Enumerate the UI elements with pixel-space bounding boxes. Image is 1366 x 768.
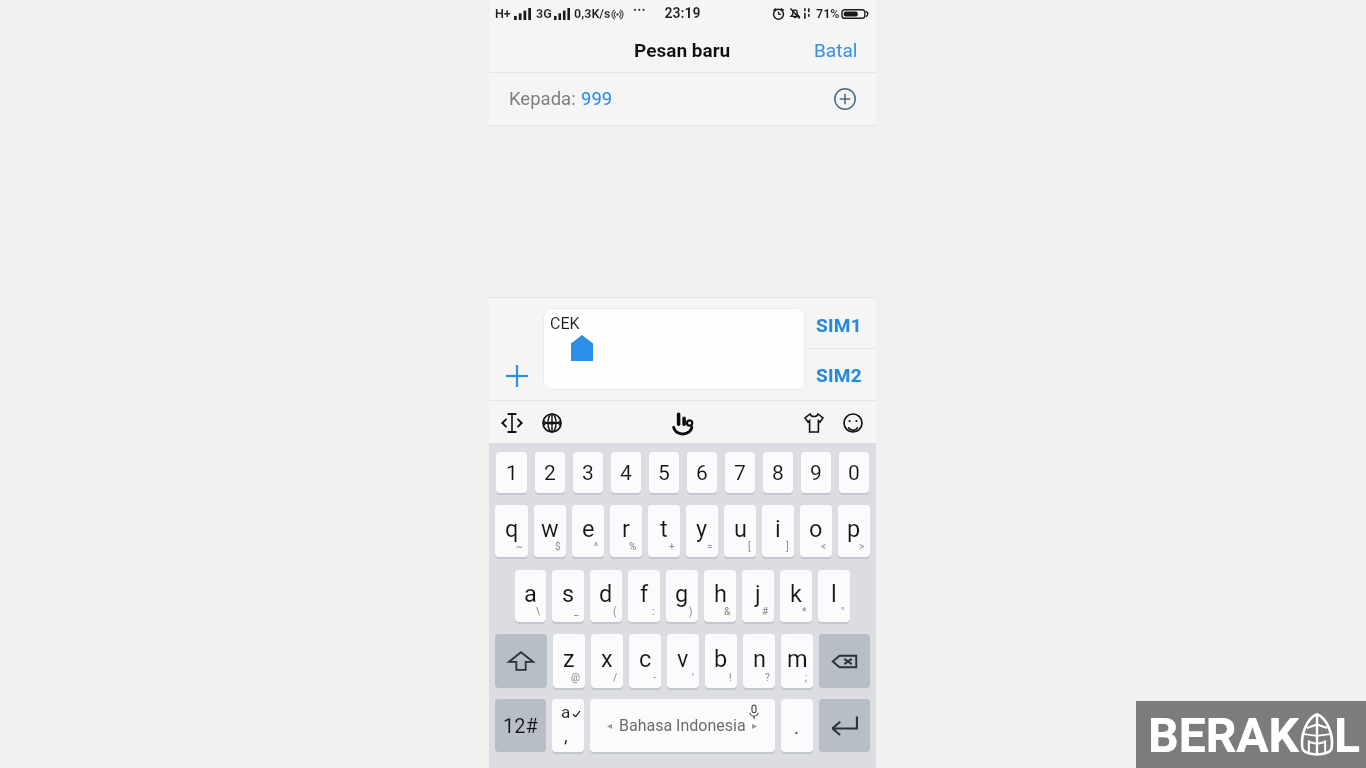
button[interactable]: i [762, 505, 794, 557]
staticText: ··· [633, 2, 646, 18]
staticText: z [563, 645, 575, 673]
staticText: L [1334, 707, 1360, 763]
staticText: @ [571, 672, 580, 684]
button[interactable]: f [628, 570, 660, 622]
button[interactable]: Theme [803, 405, 825, 441]
button[interactable]: l [818, 570, 850, 622]
button[interactable]: s [552, 570, 584, 622]
staticText: SIM1 [816, 314, 862, 336]
staticText: m [787, 645, 808, 673]
button[interactable]: a [515, 570, 546, 622]
staticText: SIM2 [816, 364, 862, 386]
staticText: d [599, 580, 613, 608]
button[interactable]: . [781, 699, 813, 752]
staticText: 5 [658, 461, 670, 486]
button[interactable]: u [724, 505, 756, 557]
staticText: 999 [581, 88, 613, 110]
button[interactable]: q [495, 505, 528, 557]
staticText: l [831, 580, 837, 608]
button[interactable]: 6 [687, 452, 717, 493]
staticText: 4 [620, 461, 632, 486]
staticText: - [653, 672, 656, 684]
staticText: Bahasa Indonesia [619, 716, 746, 735]
button[interactable]: Kepada: [489, 73, 876, 125]
staticText: / [613, 672, 618, 684]
staticText: ▸ [752, 720, 758, 732]
staticText: , [564, 724, 568, 746]
staticText: ] [786, 541, 789, 553]
staticText: ' [692, 672, 694, 684]
staticText: x [601, 645, 613, 673]
staticText: e [582, 515, 595, 543]
staticText: s [562, 580, 575, 608]
button[interactable]: 9 [801, 452, 831, 493]
button[interactable]: k [780, 570, 812, 622]
staticText: + [669, 541, 675, 553]
button[interactable]: v [667, 634, 699, 688]
button[interactable]: Backspace [819, 634, 870, 688]
staticText: Pesan baru [634, 39, 731, 61]
button[interactable]: 5 [649, 452, 679, 493]
button[interactable]: Emoji [842, 405, 864, 441]
staticText: j [755, 580, 761, 608]
staticText: ; [805, 672, 808, 684]
staticText: ! [729, 672, 732, 684]
button[interactable]: p [838, 505, 870, 557]
button[interactable] [495, 699, 546, 752]
staticText: ^ [594, 541, 599, 553]
button[interactable]: n [743, 634, 775, 688]
staticText: n [753, 645, 766, 673]
button[interactable]: h [704, 570, 736, 622]
button[interactable]: x [591, 634, 623, 688]
staticText: 23:19 [489, 5, 876, 21]
staticText: k [790, 580, 802, 608]
button[interactable]: 3 [573, 452, 603, 493]
button[interactable]: w [534, 505, 566, 557]
staticText: w [541, 515, 559, 543]
button[interactable]: 7 [725, 452, 755, 493]
button[interactable]: y [686, 505, 718, 557]
button[interactable]: SIM1 [810, 298, 876, 348]
button[interactable]: e [572, 505, 604, 557]
button[interactable]: CEK [543, 308, 805, 390]
button[interactable]: SIM2 [810, 349, 876, 400]
button[interactable]: Keyboard menu [672, 405, 694, 441]
staticText: 0 [848, 461, 860, 486]
staticText: : [652, 606, 655, 618]
button[interactable]: Text cursor [501, 405, 523, 441]
button[interactable]: 2 [535, 452, 565, 493]
staticText: _ [574, 606, 579, 618]
staticText: ) [689, 606, 693, 618]
staticText: BERAK [1148, 707, 1300, 763]
button[interactable]: j [742, 570, 774, 622]
button[interactable]: 0 [839, 452, 869, 493]
button[interactable]: m [781, 634, 813, 688]
button[interactable]: t [648, 505, 680, 557]
staticText: t [660, 515, 668, 543]
button[interactable]: Enter [819, 699, 870, 752]
staticText: u [734, 515, 747, 543]
button[interactable]: Language [541, 405, 563, 441]
button[interactable]: 4 [611, 452, 641, 493]
button[interactable]: 1 [496, 452, 527, 493]
button[interactable]: z [553, 634, 585, 688]
button[interactable]: Batal [796, 28, 876, 72]
staticText: 3 [582, 461, 594, 486]
staticText: 8 [772, 461, 784, 486]
button[interactable]: d [590, 570, 622, 622]
button[interactable]: g [666, 570, 698, 622]
button[interactable]: c [629, 634, 661, 688]
staticText: & [724, 606, 731, 618]
staticText: ( [613, 606, 617, 618]
button[interactable]: ◂ [590, 699, 775, 752]
staticText: g [675, 580, 689, 608]
button[interactable]: Add recipient [833, 87, 857, 111]
button[interactable]: Add attachment [501, 360, 533, 392]
button[interactable]: r [610, 505, 642, 557]
button[interactable]: b [705, 634, 737, 688]
button[interactable]: a [552, 699, 584, 752]
button[interactable]: Shift [495, 634, 547, 688]
button[interactable]: 8 [763, 452, 793, 493]
staticText: [ [748, 541, 751, 553]
button[interactable]: o [800, 505, 832, 557]
